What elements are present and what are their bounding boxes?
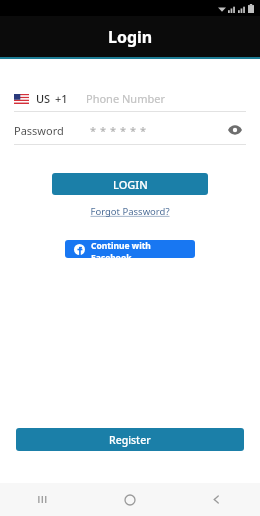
- button[interactable]: Forgot Password?: [84, 203, 176, 220]
- staticText: US: [36, 91, 51, 106]
- button[interactable]: Back: [173, 483, 260, 516]
- staticText: *: [120, 123, 127, 138]
- staticText: Register: [109, 433, 151, 447]
- button[interactable]: LOGIN: [52, 173, 208, 195]
- staticText: +1: [55, 91, 68, 106]
- button[interactable]: Phone Number: [86, 91, 246, 106]
- staticText: Password: [14, 123, 64, 138]
- button[interactable]: Show password: [224, 119, 246, 141]
- staticText: *: [110, 123, 117, 138]
- button[interactable]: Register: [16, 428, 244, 451]
- button[interactable]: US: [14, 91, 72, 106]
- staticText: *: [90, 123, 97, 138]
- staticText: Forgot Password?: [90, 205, 170, 218]
- staticText: *: [140, 123, 147, 138]
- button[interactable]: Password: [14, 116, 246, 144]
- button[interactable]: Home: [86, 483, 173, 516]
- button[interactable]: Recent apps: [0, 483, 86, 516]
- staticText: LOGIN: [113, 177, 148, 192]
- staticText: *: [100, 123, 107, 138]
- staticText: *: [130, 123, 137, 138]
- staticText: Continue with Facebook: [91, 240, 186, 258]
- button[interactable]: Continue with Facebook: [65, 240, 195, 258]
- staticText: Login: [108, 26, 153, 48]
- staticText: Phone Number: [86, 91, 165, 106]
